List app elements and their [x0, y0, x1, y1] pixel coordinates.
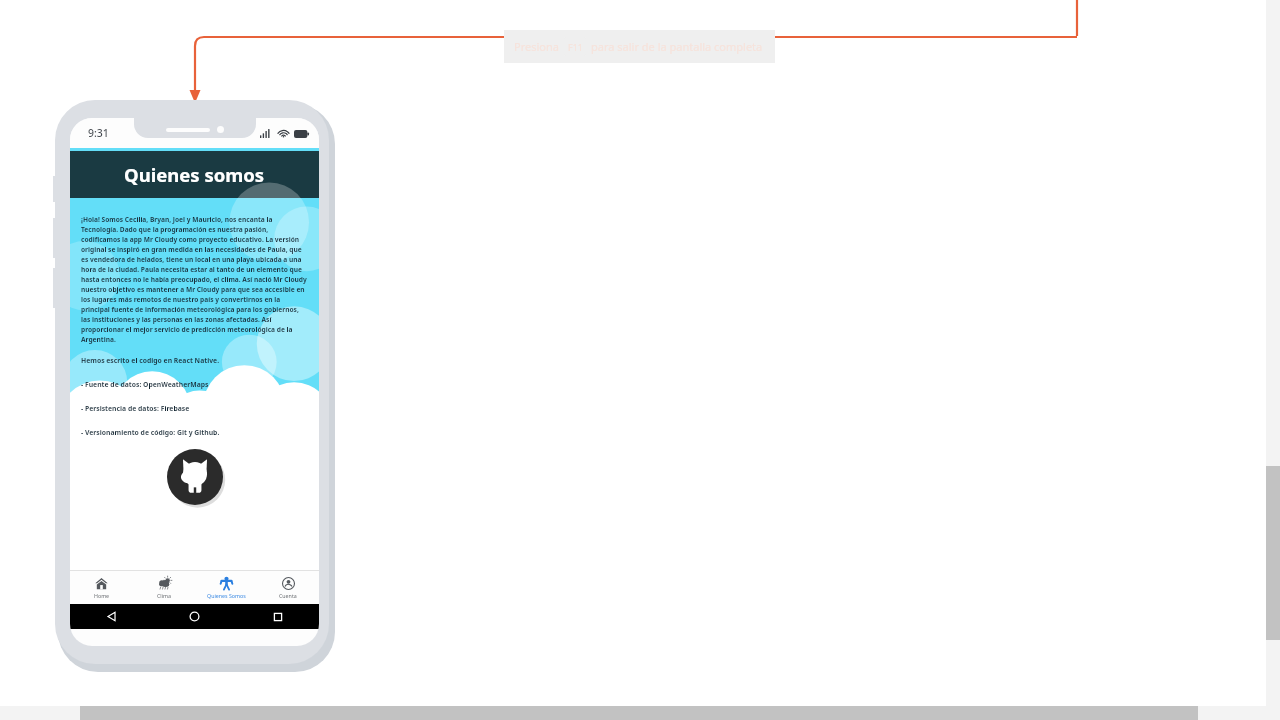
staticText: para salir de la pantalla completa	[591, 39, 763, 54]
staticText: Hemos escrito el codigo en React Native.	[81, 356, 220, 365]
button[interactable]: Back	[70, 604, 153, 629]
staticText: Home	[94, 592, 110, 599]
button[interactable]: Recent apps	[236, 604, 319, 629]
staticText: F11	[568, 41, 583, 53]
staticText: Quienes somos	[124, 162, 265, 187]
staticText: - Persistencia de datos: Firebase	[81, 404, 190, 413]
staticText: Presiona	[514, 39, 559, 54]
staticText: Cuenta	[279, 592, 297, 599]
staticText: 9:31	[88, 126, 109, 140]
button[interactable]: GitHub	[167, 449, 223, 505]
button[interactable]: Clima	[133, 571, 195, 604]
button[interactable]: Home	[70, 571, 133, 604]
staticText: Clima	[157, 592, 172, 599]
staticText: ¡Hola! Somos Cecilia, Bryan, Joel y Maur…	[81, 215, 307, 343]
button[interactable]: Home	[153, 604, 236, 629]
staticText: - Fuente de datos: OpenWeatherMaps	[81, 380, 209, 389]
staticText: Quienes Somos	[207, 592, 246, 599]
button[interactable]: Quienes Somos	[195, 571, 257, 604]
button[interactable]: Cuenta	[257, 571, 319, 604]
staticText: - Versionamiento de código: Git y Github…	[81, 428, 220, 437]
